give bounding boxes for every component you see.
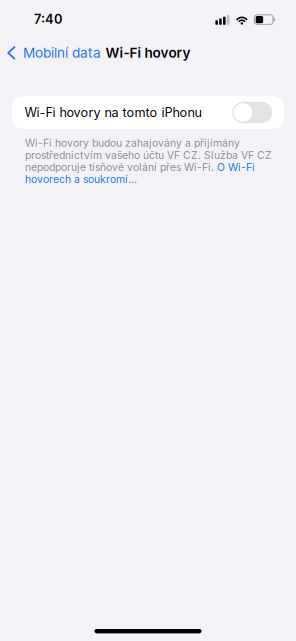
- staticText: Wi-Fi hovory budou zahajovány a přijímán…: [25, 137, 272, 185]
- button[interactable]: Wi-Fi hovory na tomto iPhonu: [12, 96, 284, 129]
- staticText: Wi-Fi hovory na tomto iPhonu: [24, 105, 201, 120]
- staticText: Wi-Fi hovory: [105, 45, 190, 61]
- button[interactable]: Mobilní data: [0, 41, 107, 65]
- staticText: Mobilní data: [23, 45, 101, 61]
- staticText: 7:40: [34, 11, 62, 27]
